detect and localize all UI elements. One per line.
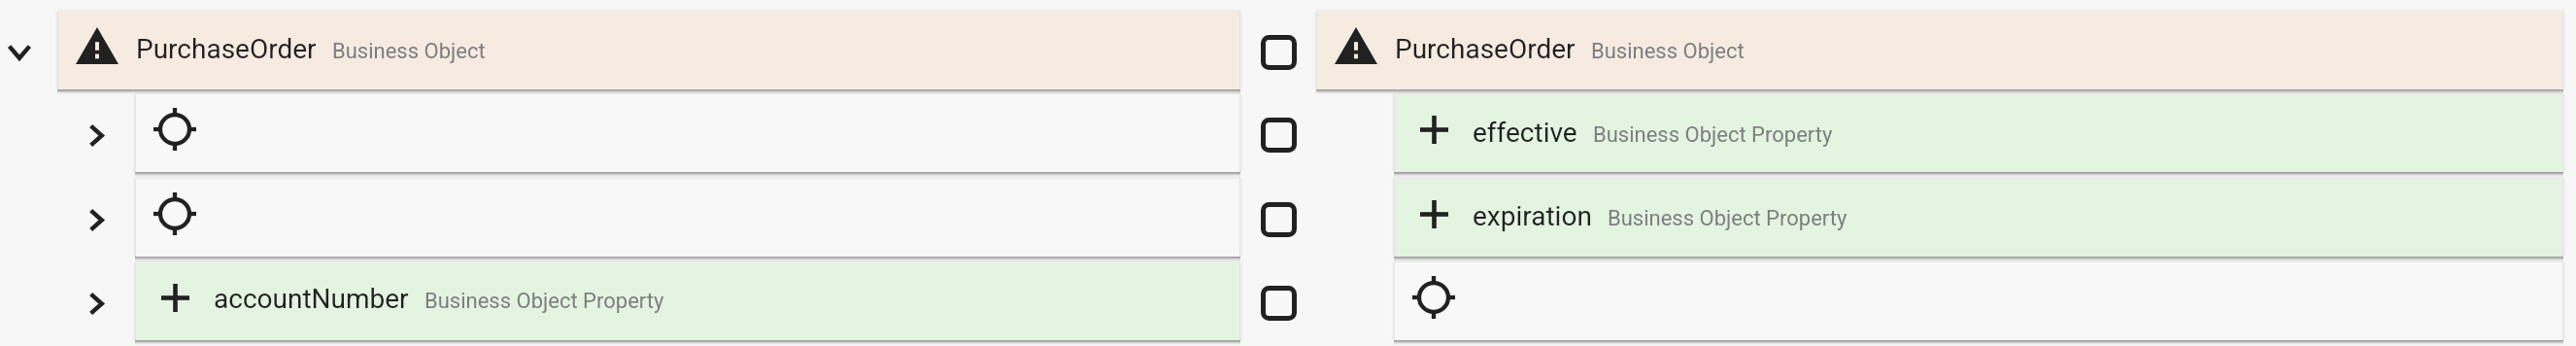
button[interactable]: Expand node [58,179,136,257]
button[interactable]: Select item [1261,202,1297,237]
staticText: PurchaseOrder [1395,33,1576,65]
staticText: PurchaseOrder [136,33,317,65]
staticText: expiration [1473,200,1592,232]
staticText: Business Object Property [1608,206,1847,231]
button[interactable]: Matched item [1395,262,2562,340]
button[interactable]: Select item [1261,35,1297,70]
button[interactable]: PurchaseOrder, Business Object [58,12,1239,89]
button[interactable]: PurchaseOrder, Business Object [1317,12,2562,89]
button[interactable]: Expand node [58,94,136,172]
button[interactable]: expiration, Business Object Property [1395,179,2562,257]
staticText: Business Object Property [424,289,664,314]
button[interactable]: Matched item [136,179,1239,257]
staticText: accountNumber [214,283,409,315]
staticText: Business Object [332,39,486,64]
staticText: Business Object [1591,39,1745,64]
staticText: Business Object Property [1593,122,1833,148]
button[interactable]: Collapse PurchaseOrder [0,12,58,89]
button[interactable]: Select item [1261,286,1297,321]
button[interactable]: Matched item [136,94,1239,172]
button[interactable]: Select item [1261,118,1297,153]
button[interactable]: effective, Business Object Property [1395,94,2562,172]
staticText: effective [1473,117,1577,149]
button[interactable]: Expand node [58,262,136,340]
button[interactable]: accountNumber, Business Object Property [136,262,1239,340]
